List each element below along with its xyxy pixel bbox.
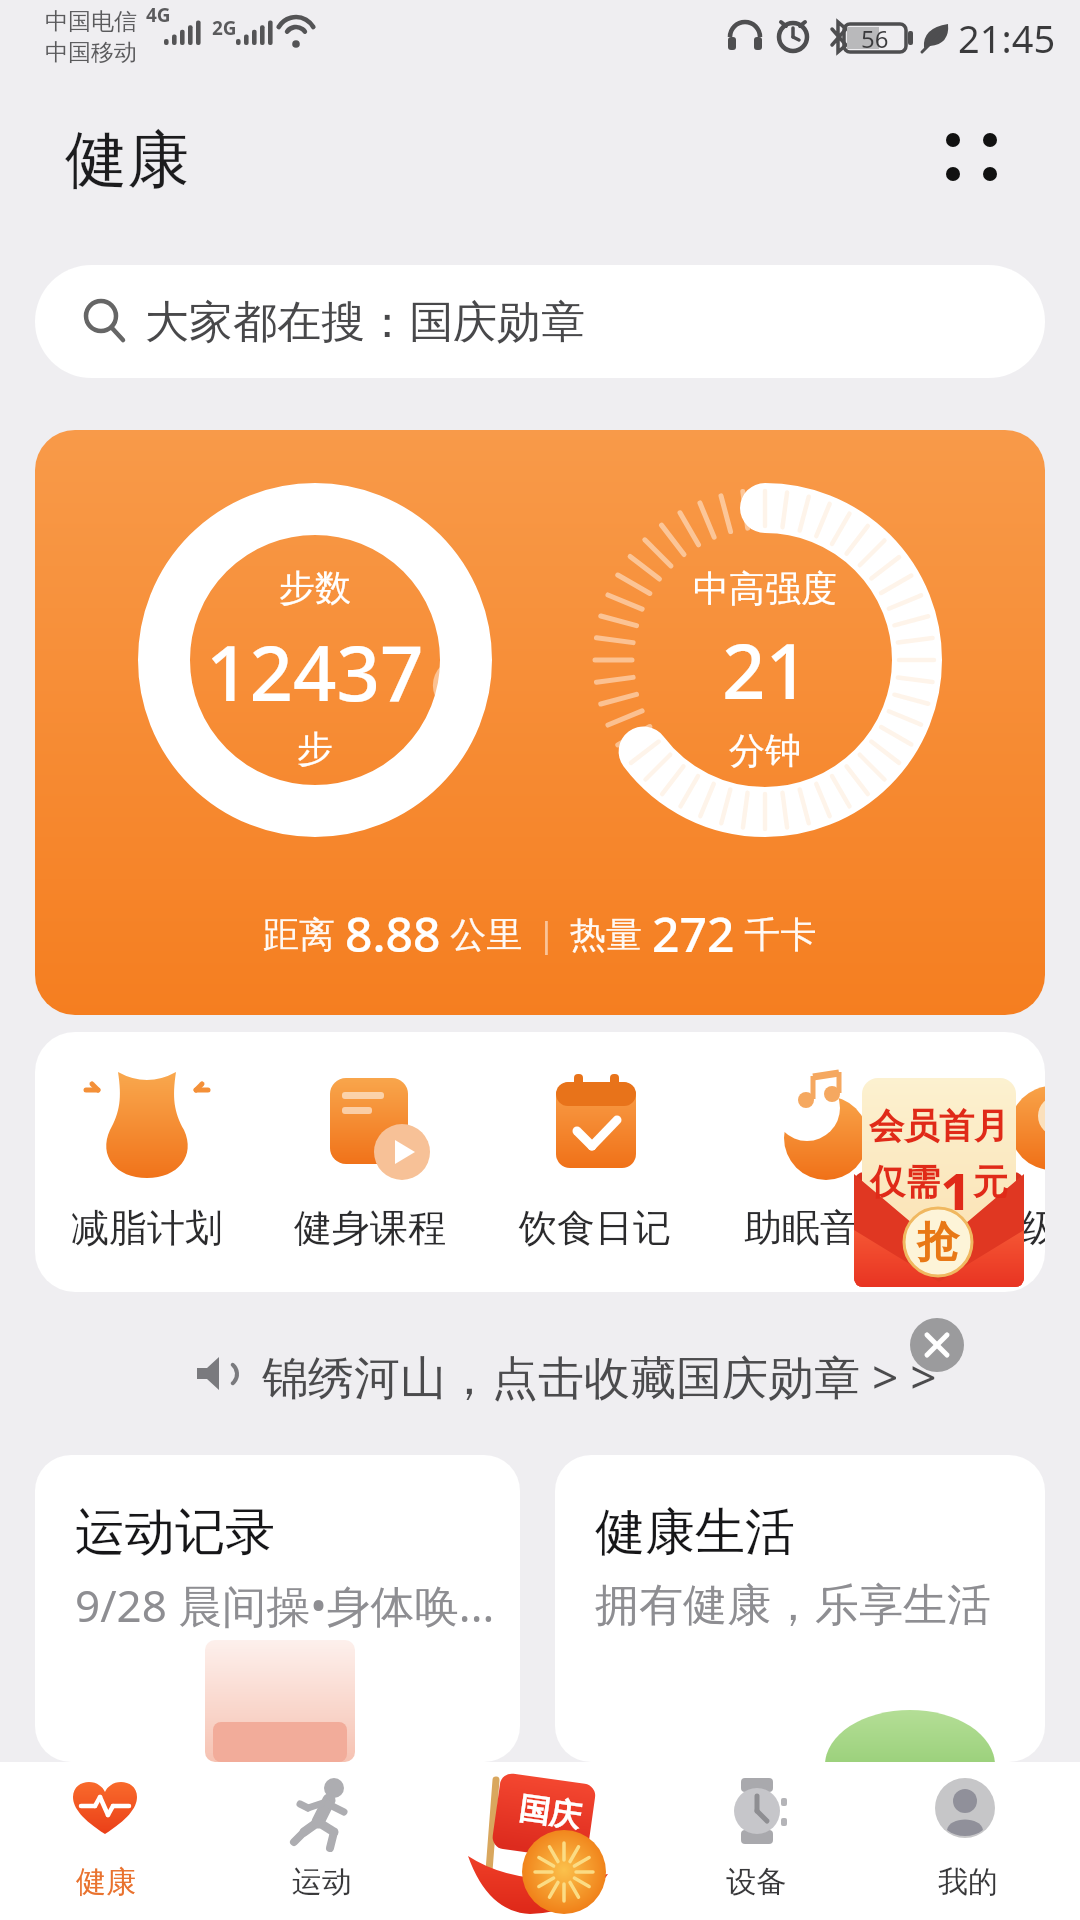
staticText: 运动 [292, 1863, 352, 1901]
staticText: 我的 [938, 1863, 998, 1901]
button[interactable]: 步数 [35, 430, 1045, 1015]
staticText: 运动记录 [75, 1501, 275, 1564]
staticText: 减脂计划 [71, 1204, 223, 1252]
staticText: 大家都在搜：国庆勋章 [145, 295, 585, 350]
staticText: 元 [973, 1160, 1008, 1204]
button[interactable]: 会员首月 [854, 1078, 1024, 1288]
staticText: 抢 [917, 1216, 959, 1269]
staticText: 热量 [570, 909, 652, 958]
staticText: 中国电信 [45, 7, 137, 36]
staticText: 分钟 [729, 728, 801, 773]
staticText: 272 [652, 901, 735, 966]
button[interactable] [242, 1762, 402, 1920]
button[interactable] [455, 1762, 625, 1920]
staticText: 公里 [441, 909, 523, 958]
button[interactable] [495, 1052, 695, 1282]
staticText: 助眠音乐 [744, 1204, 896, 1252]
staticText: 距离 [263, 909, 345, 958]
button[interactable] [910, 1318, 964, 1372]
staticText: 56 [861, 22, 889, 55]
button[interactable] [675, 1762, 835, 1920]
button[interactable] [270, 1052, 470, 1282]
staticText: 千卡 [735, 909, 817, 958]
staticText: 健康 [65, 121, 189, 199]
button[interactable]: 健康生活 [555, 1455, 1045, 1762]
staticText: 健身课程 [294, 1204, 446, 1252]
staticText: 步数 [279, 565, 351, 610]
button[interactable] [47, 1052, 247, 1282]
staticText: 国庆 [516, 1789, 583, 1836]
button[interactable] [720, 1052, 920, 1282]
staticText: | [537, 911, 556, 957]
staticText: 4G [146, 2, 171, 28]
staticText: 设备 [726, 1863, 786, 1901]
staticText: 12437 [206, 620, 424, 724]
button[interactable] [25, 1762, 185, 1920]
staticText: 健康生活 [595, 1501, 795, 1564]
staticText: 级 [1022, 1204, 1045, 1252]
staticText: 拥有健康，乐享生活 [595, 1578, 991, 1633]
button[interactable] [150, 1330, 930, 1425]
button[interactable] [930, 120, 1020, 210]
staticText: 步 [297, 726, 333, 771]
staticText: 9/28 晨间操•身体唤... [75, 1575, 495, 1635]
button[interactable]: 大家都在搜：国庆勋章 [35, 265, 1045, 378]
staticText: 2G [212, 15, 237, 41]
button[interactable] [885, 1762, 1045, 1920]
staticText: 21 [722, 618, 809, 722]
staticText: 中高强度 [693, 566, 837, 611]
staticText: 中国移动 [45, 38, 137, 67]
staticText: 会员首月 [869, 1104, 1009, 1148]
staticText: 锦绣河山，点击收藏国庆勋章 > > [262, 1345, 937, 1408]
staticText: 1 [940, 1154, 973, 1210]
staticText: 健康 [76, 1863, 136, 1901]
staticText: 饮食日记 [519, 1204, 671, 1252]
button[interactable]: 运动记录 [35, 1455, 520, 1762]
staticText: 8.88 [345, 901, 441, 966]
staticText: 21:45 [958, 12, 1056, 64]
staticText: 仅需 [870, 1160, 940, 1204]
